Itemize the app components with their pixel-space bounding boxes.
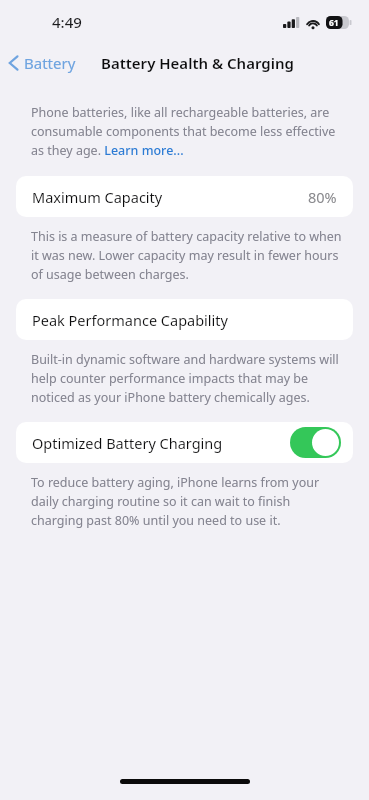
button[interactable]: Battery xyxy=(0,49,82,77)
staticText: To reduce battery aging, iPhone learns f… xyxy=(31,474,345,529)
button[interactable]: Peak Performance Capability xyxy=(16,299,353,340)
button[interactable]: Optimized Battery Charging toggle xyxy=(290,427,341,458)
button[interactable]: Optimized Battery Charging xyxy=(16,422,353,463)
staticText: Battery Health & Charging xyxy=(101,53,294,73)
staticText: Maximum Capacity xyxy=(32,187,163,207)
staticText: Built-in dynamic software and hardware s… xyxy=(31,351,345,406)
staticText: 4:49 xyxy=(52,12,82,32)
button[interactable]: Maximum Capacity xyxy=(16,176,353,217)
staticText: Optimized Battery Charging xyxy=(32,433,223,453)
staticText: Phone batteries, like all rechargeable b… xyxy=(31,104,347,159)
staticText: 61 xyxy=(329,17,339,29)
staticText: Peak Performance Capability xyxy=(32,310,228,330)
staticText: 80% xyxy=(308,187,337,207)
staticText: Battery xyxy=(24,53,76,73)
staticText: This is a measure of battery capacity re… xyxy=(31,228,345,283)
